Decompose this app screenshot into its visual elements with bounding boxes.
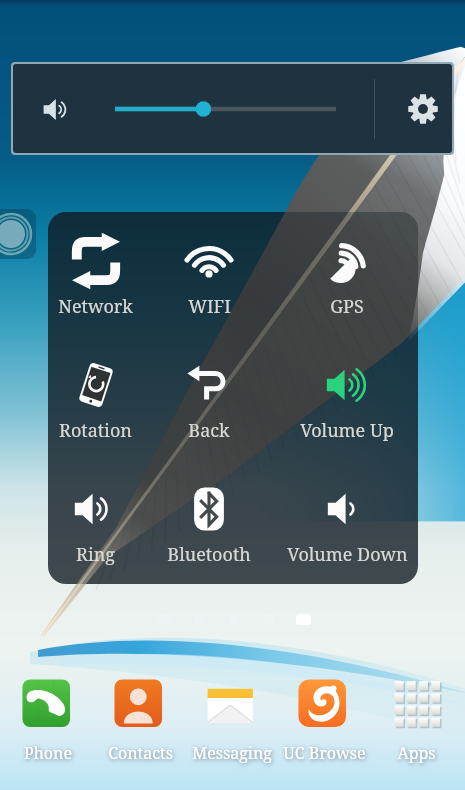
- button[interactable]: Page 5: [286, 607, 321, 631]
- button[interactable]: Apps: [370, 676, 462, 764]
- staticText: Back: [188, 418, 230, 443]
- button[interactable]: Contacts: [94, 676, 186, 764]
- staticText: Apps: [397, 742, 436, 764]
- staticText: WIFI: [188, 294, 231, 319]
- staticText: Volume Up: [300, 418, 394, 443]
- button[interactable]: Rotation: [48, 336, 142, 460]
- button[interactable]: UC Browse: [278, 676, 370, 764]
- button[interactable]: WIFI: [142, 212, 276, 336]
- staticText: Phone: [24, 742, 72, 764]
- button[interactable]: GPS: [276, 212, 418, 336]
- button[interactable]: Mute: [32, 84, 82, 134]
- staticText: Bluetooth: [167, 542, 251, 567]
- button[interactable]: Ring: [48, 460, 142, 584]
- button[interactable]: Back: [142, 336, 276, 460]
- button[interactable]: Messaging: [186, 676, 278, 764]
- staticText: Ring: [76, 542, 115, 567]
- staticText: Messaging: [192, 742, 272, 764]
- staticText: Rotation: [59, 418, 132, 443]
- staticText: GPS: [330, 294, 364, 319]
- button[interactable]: Volume Down: [276, 460, 418, 584]
- staticText: UC Browse: [283, 742, 366, 764]
- staticText: Network: [58, 294, 133, 319]
- button[interactable]: Phone: [2, 676, 94, 764]
- button[interactable]: Settings: [397, 83, 449, 135]
- button[interactable]: Mute: [13, 64, 452, 153]
- button[interactable]: Volume Up: [276, 336, 418, 460]
- button[interactable]: [115, 89, 336, 129]
- button[interactable]: Network: [48, 212, 142, 336]
- button[interactable]: Widget: [0, 209, 36, 259]
- staticText: Volume Down: [287, 542, 408, 567]
- button[interactable]: Bluetooth: [142, 460, 276, 584]
- staticText: Contacts: [108, 742, 173, 764]
